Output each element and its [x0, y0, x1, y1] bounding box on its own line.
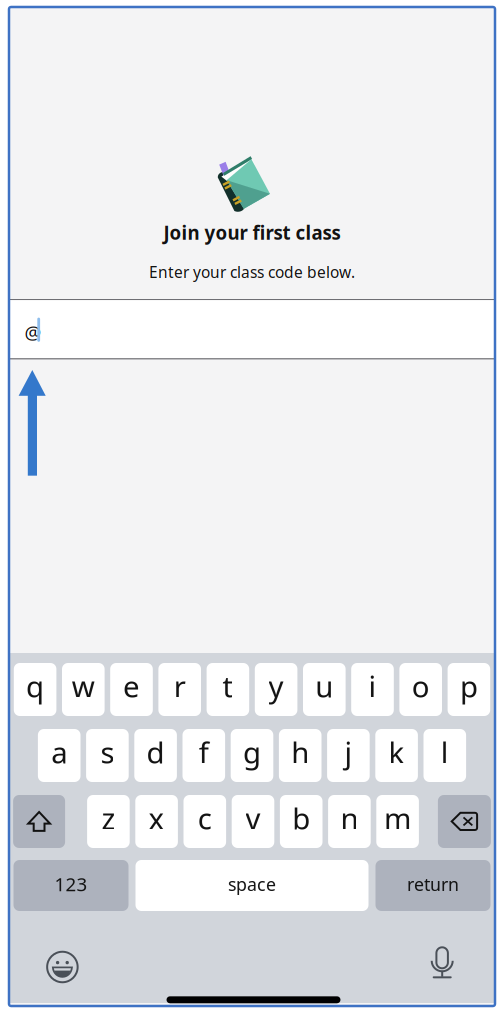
button[interactable]: Delete: [438, 795, 491, 848]
staticText: n: [340, 798, 358, 838]
button[interactable]: h: [279, 729, 321, 782]
button[interactable]: a: [38, 729, 80, 782]
staticText: w: [72, 666, 95, 706]
button[interactable]: n: [328, 795, 371, 848]
staticText: i: [368, 666, 376, 706]
staticText: 123: [54, 871, 87, 897]
staticText: e: [123, 666, 140, 706]
staticText: h: [291, 732, 309, 772]
button[interactable]: j: [327, 729, 370, 782]
button[interactable]: f: [182, 729, 225, 782]
staticText: r: [174, 666, 186, 706]
staticText: o: [412, 666, 430, 706]
staticText: u: [315, 666, 333, 706]
staticText: p: [460, 666, 478, 706]
button[interactable]: z: [87, 795, 130, 848]
button[interactable]: p: [448, 663, 490, 716]
button[interactable]: space: [135, 860, 368, 911]
button[interactable]: b: [280, 795, 322, 848]
staticText: a: [51, 732, 67, 772]
staticText: d: [147, 732, 165, 772]
staticText: @: [24, 320, 41, 345]
staticText: s: [100, 732, 114, 772]
staticText: v: [245, 798, 260, 838]
button[interactable]: k: [375, 729, 418, 782]
staticText: Join your first class: [163, 220, 340, 245]
staticText: g: [243, 732, 261, 772]
staticText: l: [441, 732, 449, 772]
staticText: c: [198, 798, 212, 838]
staticText: return: [407, 872, 459, 896]
button[interactable]: d: [134, 729, 177, 782]
button[interactable]: Shift: [13, 795, 65, 848]
staticText: b: [292, 798, 310, 838]
button[interactable]: v: [232, 795, 274, 848]
staticText: k: [389, 732, 405, 772]
button[interactable]: g: [231, 729, 273, 782]
staticText: y: [269, 666, 284, 706]
button[interactable]: l: [423, 729, 466, 782]
button[interactable]: q: [14, 663, 56, 716]
button[interactable]: 123: [13, 860, 128, 911]
button[interactable]: y: [255, 663, 297, 716]
button[interactable]: u: [303, 663, 346, 716]
staticText: x: [149, 798, 165, 838]
button[interactable]: r: [158, 663, 201, 716]
staticText: f: [199, 732, 209, 772]
button[interactable]: Emoji keyboard: [42, 947, 82, 987]
staticText: space: [228, 872, 276, 896]
staticText: j: [344, 732, 352, 772]
staticText: m: [384, 798, 411, 838]
button[interactable]: e: [110, 663, 153, 716]
button[interactable]: w: [62, 663, 105, 716]
staticText: q: [26, 666, 44, 706]
button[interactable]: o: [399, 663, 442, 716]
button[interactable]: x: [135, 795, 178, 848]
button[interactable]: i: [351, 663, 394, 716]
button[interactable]: c: [183, 795, 226, 848]
staticText: t: [222, 666, 233, 706]
button[interactable]: t: [207, 663, 249, 716]
button[interactable]: return: [375, 860, 490, 911]
button[interactable]: m: [376, 795, 419, 848]
staticText: z: [101, 798, 115, 838]
button[interactable]: s: [86, 729, 129, 782]
staticText: Enter your class code below.: [149, 261, 355, 283]
button[interactable]: Dictate: [422, 943, 462, 983]
